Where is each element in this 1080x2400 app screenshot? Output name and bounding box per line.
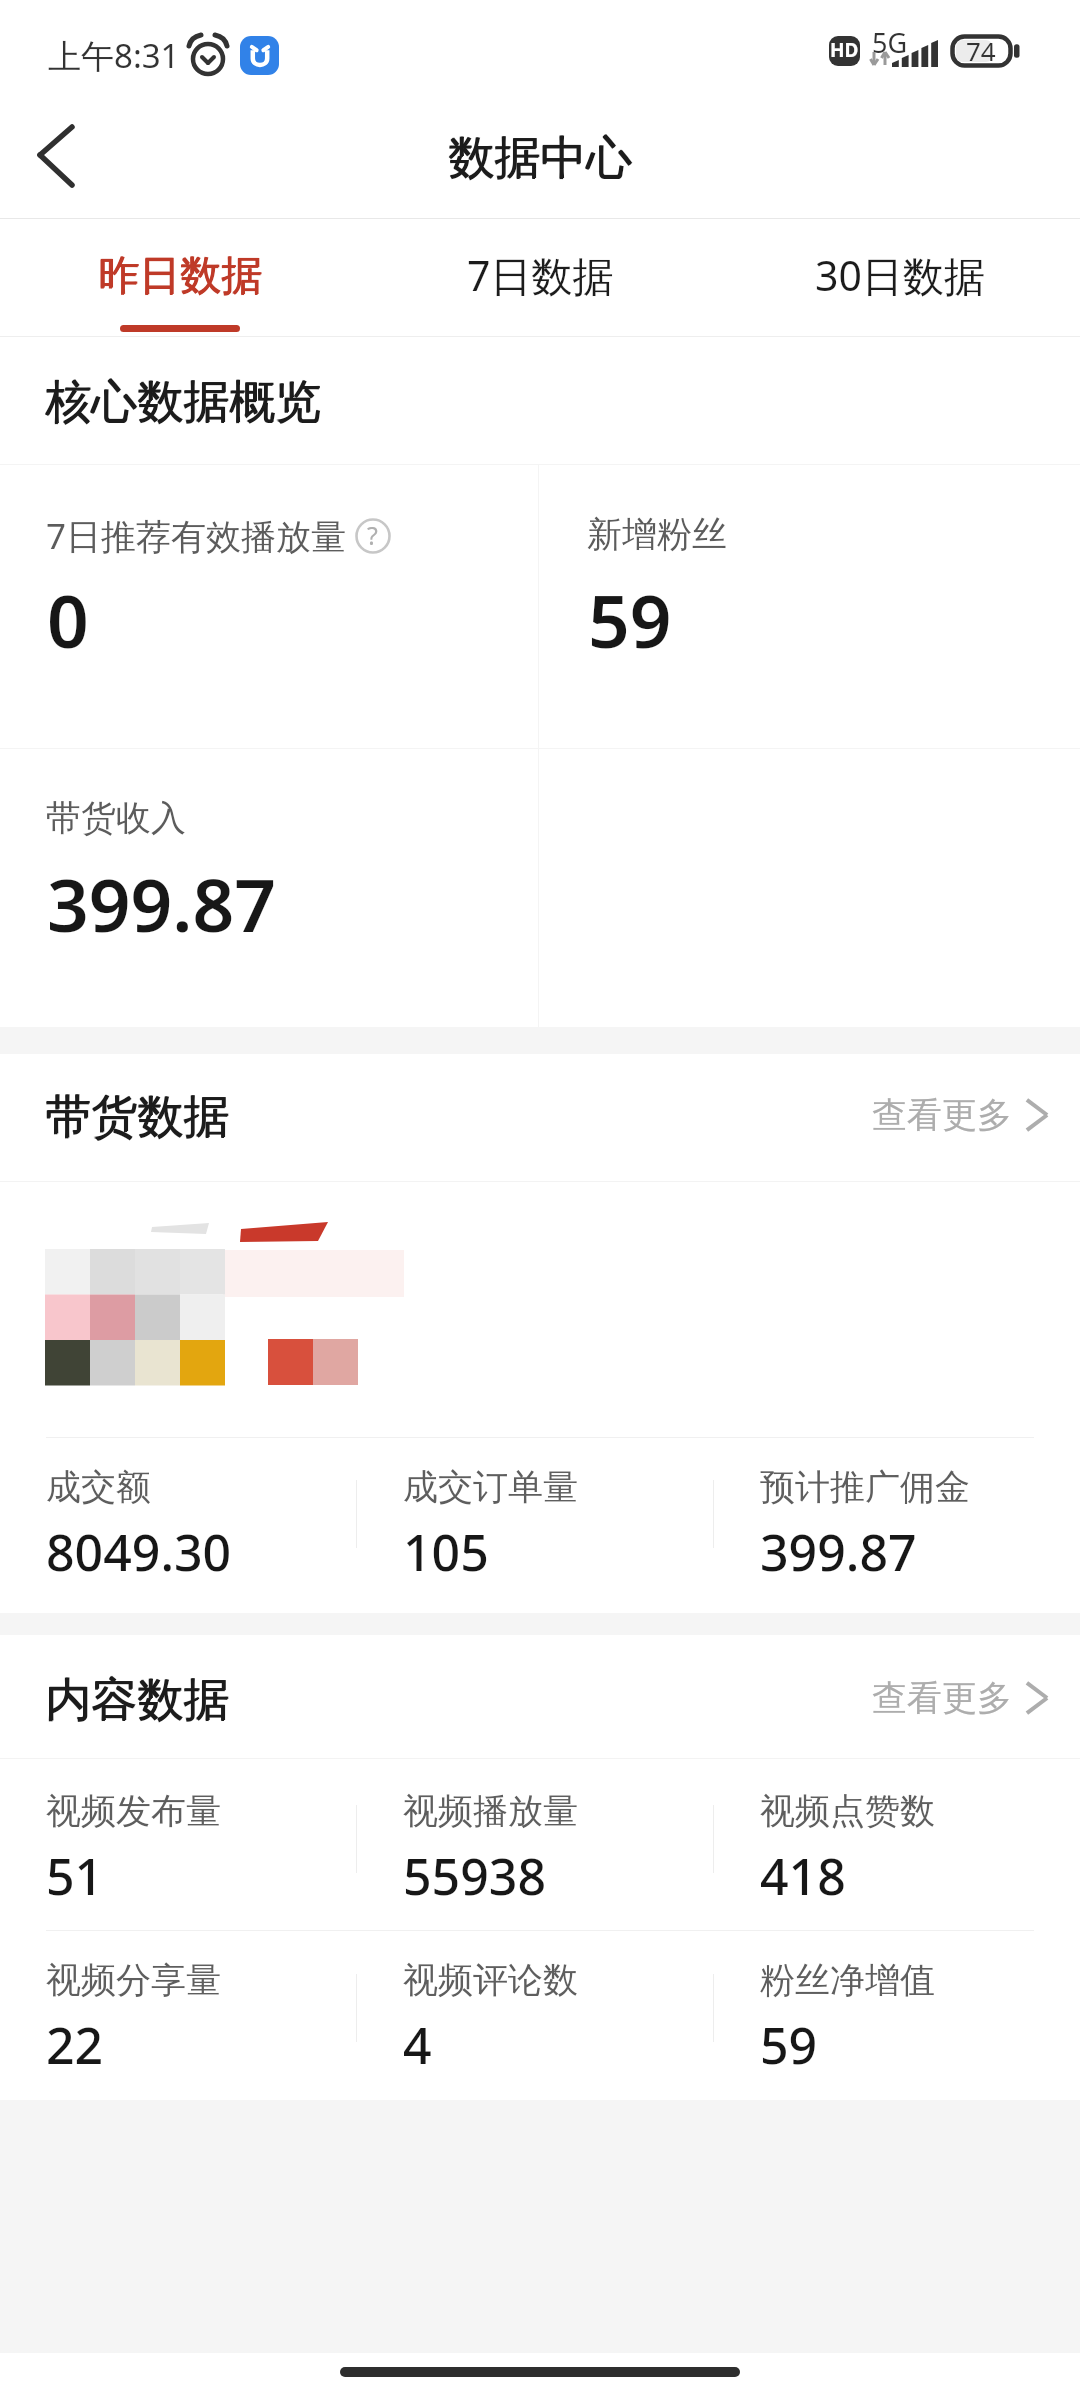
staticText: 视频播放量 [403, 1789, 578, 1833]
staticText: 数据中心 [449, 129, 633, 187]
staticText: 5G [872, 24, 908, 61]
staticText: 带货数据 [45, 1089, 229, 1147]
staticText: 内容数据 [46, 1671, 230, 1729]
button[interactable]: 视频播放量 [403, 1784, 733, 1914]
staticText: 视频点赞数 [760, 1789, 935, 1833]
staticText: 成交订单量 [403, 1465, 578, 1509]
staticText: 59 [760, 2011, 818, 2079]
staticText: 视频评论数 [403, 1958, 578, 2002]
staticText: 22 [46, 2011, 104, 2079]
staticText: 查看更多 [872, 1676, 1012, 1720]
button[interactable]: 视频评论数 [403, 1953, 733, 2083]
button[interactable]: 视频点赞数 [760, 1784, 1080, 1914]
button[interactable]: 30日数据 [720, 219, 1080, 336]
button[interactable]: Back [0, 100, 112, 218]
staticText: 399.87 [760, 1518, 917, 1586]
staticText: 0 [47, 570, 89, 669]
staticText: 8049.30 [46, 1518, 232, 1586]
staticText: 74 [966, 33, 996, 67]
staticText: 55938 [403, 1842, 546, 1910]
button[interactable]: 7日数据 [360, 219, 720, 336]
staticText: 粉丝净增值 [760, 1958, 935, 2002]
staticText: 预计推广佣金 [760, 1465, 970, 1509]
staticText: HD [830, 37, 859, 63]
button[interactable]: 7日推荐有效播放量 [45, 465, 583, 748]
staticText: 30日数据 [815, 247, 985, 303]
staticText: 核心数据概览 [46, 373, 322, 431]
button[interactable]: 预计推广佣金 [760, 1460, 1080, 1590]
staticText: 399.87 [47, 854, 276, 953]
staticText: 数据中心 [448, 129, 632, 187]
staticText: 视频分享量 [46, 1958, 221, 2002]
button[interactable]: 新增粉丝 [586, 465, 1076, 748]
button[interactable]: 成交额 [46, 1460, 376, 1590]
staticText: 带货数据 [46, 1088, 230, 1146]
staticText: 内容数据 [45, 1672, 229, 1730]
button[interactable]: 昨日数据 [0, 219, 360, 336]
staticText: 带货数据 [45, 1088, 229, 1146]
staticText: 7日数据 [467, 247, 614, 303]
staticText: 上午8:31 [48, 33, 180, 78]
staticText: ? [367, 518, 378, 552]
staticText: 核心数据概览 [45, 373, 321, 431]
button[interactable]: 粉丝净增值 [760, 1953, 1080, 2083]
staticText: 4 [403, 2011, 432, 2079]
staticText: 昨日数据 [98, 251, 262, 303]
staticText: 核心数据概览 [45, 374, 321, 432]
staticText: 昨日数据 [98, 250, 262, 302]
button[interactable]: 带货收入 [45, 749, 583, 1032]
staticText: 105 [403, 1518, 489, 1586]
button[interactable]: 查看更多 [872, 1093, 1051, 1137]
staticText: 内容数据 [45, 1671, 229, 1729]
staticText: 51 [46, 1842, 104, 1910]
staticText: 418 [760, 1842, 846, 1910]
staticText: 查看更多 [872, 1093, 1012, 1137]
staticText: 新增粉丝 [587, 512, 727, 556]
staticText: 数据中心 [448, 130, 632, 188]
button[interactable]: 视频分享量 [46, 1953, 376, 2083]
staticText: 7日推荐有效播放量 [46, 512, 347, 560]
staticText: 59 [588, 570, 672, 669]
staticText: 昨日数据 [99, 250, 263, 302]
button[interactable]: 成交订单量 [403, 1460, 733, 1590]
button[interactable]: 查看更多 [872, 1676, 1051, 1720]
staticText: 成交额 [46, 1465, 151, 1509]
staticText: 带货收入 [46, 796, 186, 840]
staticText: 视频发布量 [46, 1789, 221, 1833]
button[interactable]: 视频发布量 [46, 1784, 376, 1914]
